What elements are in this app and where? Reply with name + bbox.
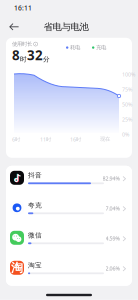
button[interactable]: Back — [0, 18, 25, 36]
staticText: 25% — [122, 116, 132, 123]
staticText: 16:11 — [14, 3, 32, 12]
button[interactable]: 微信 — [6, 226, 132, 256]
staticText: 耗电 — [70, 44, 80, 51]
staticText: 8 — [12, 46, 20, 64]
staticText: 4.59% — [105, 235, 119, 242]
staticText: 32 — [27, 46, 43, 64]
staticText: 夸克 — [28, 201, 42, 209]
staticText: 6时 — [12, 136, 20, 143]
staticText: 100% — [122, 71, 135, 78]
staticText: 16时 — [70, 136, 81, 143]
staticText: 省电与电池 — [43, 21, 88, 33]
staticText: 现在 — [100, 136, 110, 142]
staticText: 微信 — [28, 231, 42, 239]
button[interactable]: 淘 — [6, 256, 132, 286]
staticText: 82.94% — [102, 175, 119, 182]
staticText: 75% — [122, 86, 132, 93]
staticText: 使用时长 — [12, 41, 32, 47]
button[interactable]: 夸克 — [6, 196, 132, 226]
staticText: 分 — [43, 55, 50, 63]
staticText: 7.04% — [105, 205, 119, 212]
button[interactable]: 抖音 — [6, 166, 132, 196]
staticText: 11时 — [40, 136, 51, 143]
staticText: 2.06% — [105, 265, 119, 272]
staticText: 充电 — [96, 44, 106, 51]
staticText: 淘宝 — [28, 261, 42, 269]
staticText: 0% — [122, 131, 129, 138]
staticText: 淘 — [11, 260, 23, 275]
staticText: 50% — [122, 101, 132, 108]
staticText: 时 — [20, 55, 27, 63]
staticText: 抖音 — [28, 171, 42, 179]
